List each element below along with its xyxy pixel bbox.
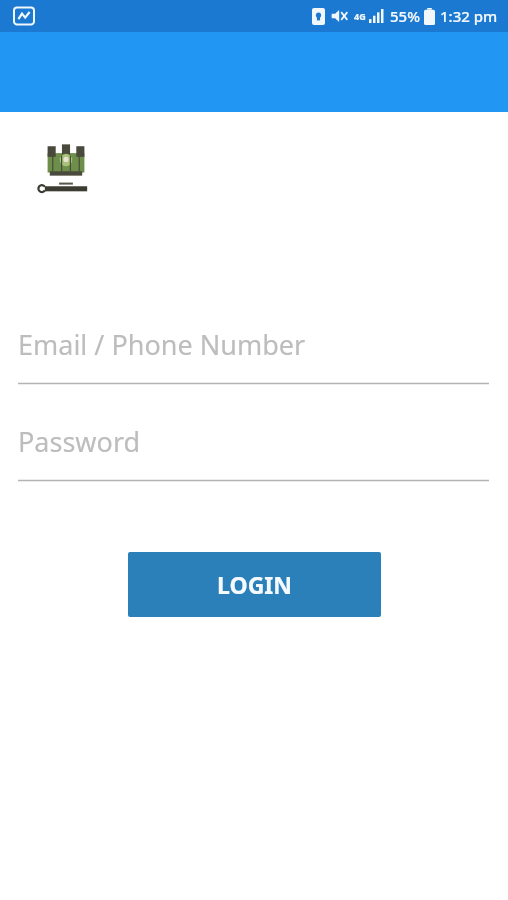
button[interactable]: LOGIN [128,552,381,617]
staticText: 55% [390,6,420,26]
button[interactable]: Email / Phone Number [0,318,508,386]
staticText: 4G [354,10,366,22]
staticText: Password [18,423,141,460]
staticText: LOGIN [217,569,292,600]
button[interactable]: Password [0,416,508,484]
staticText: Email / Phone Number [18,326,306,363]
staticText: 1:32 pm [440,6,498,26]
